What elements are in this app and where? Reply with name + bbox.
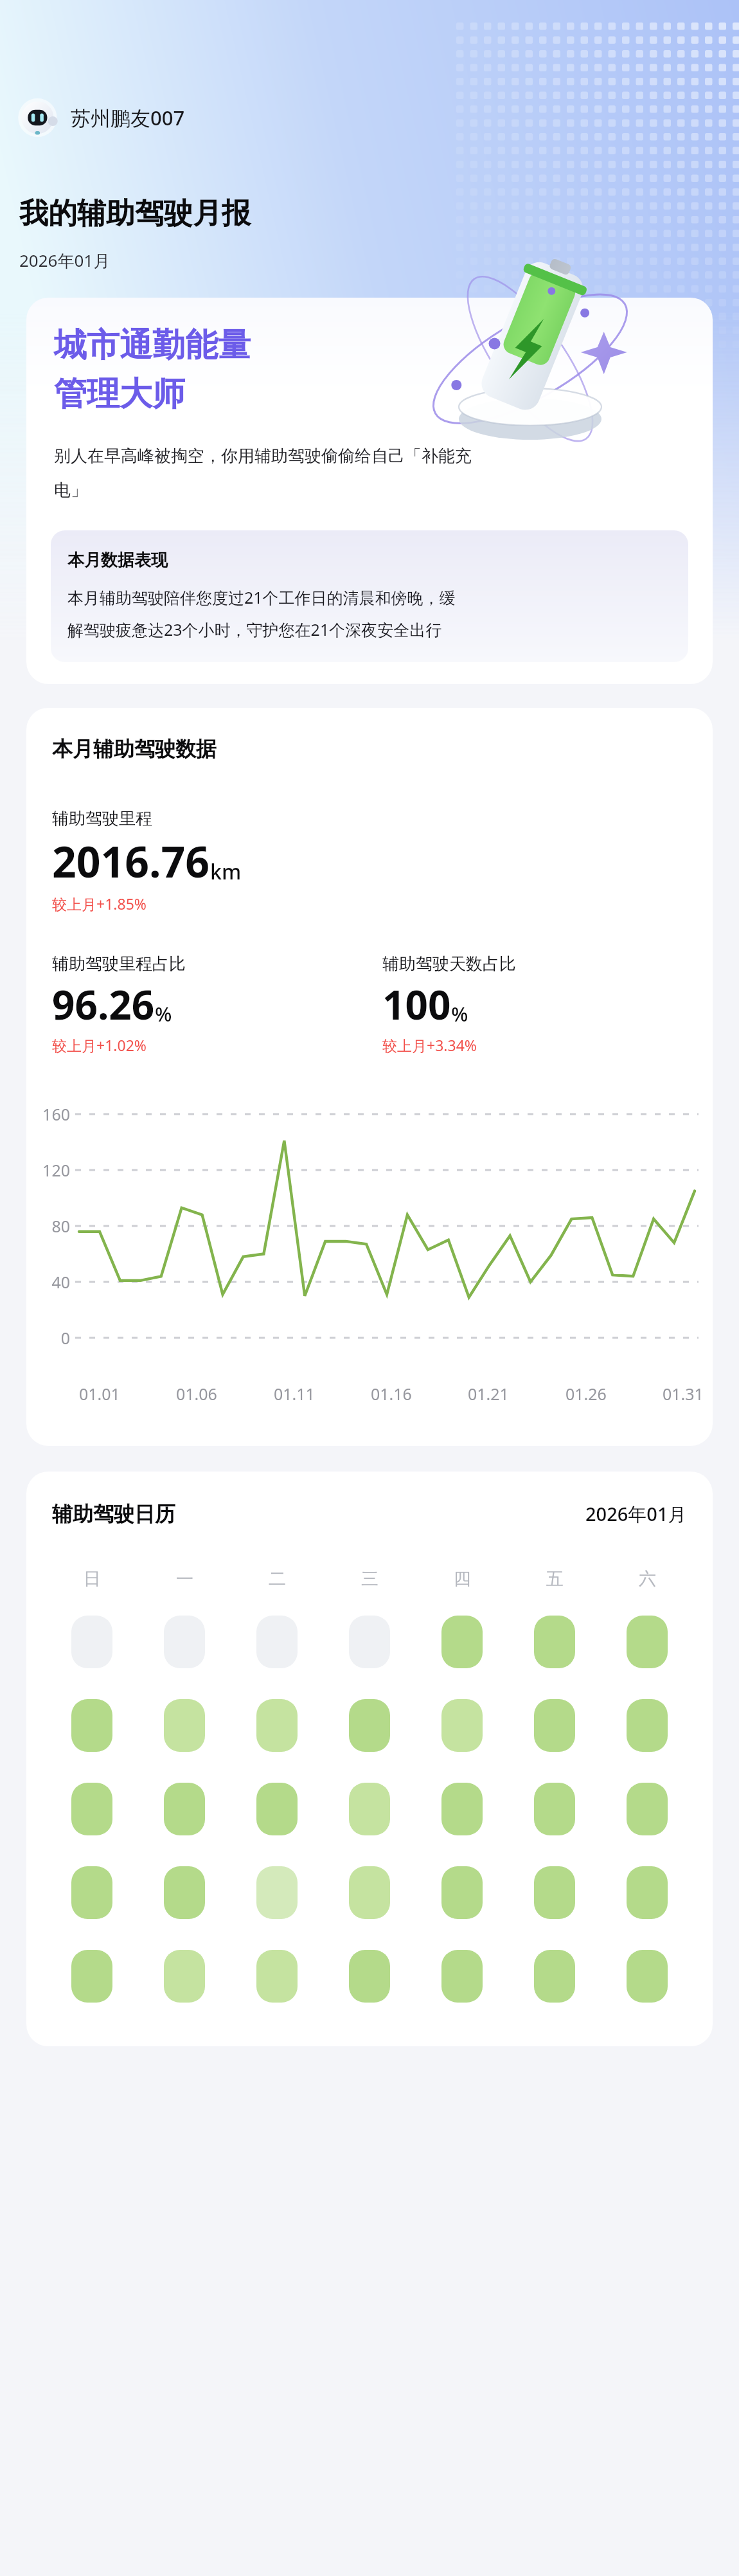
button[interactable] — [71, 1866, 112, 1919]
button[interactable] — [627, 1783, 668, 1835]
staticText: 电」 — [54, 480, 87, 501]
staticText: 01.01 — [79, 1383, 120, 1405]
button[interactable] — [349, 1616, 390, 1668]
staticText: 较上月+3.34% — [382, 1035, 477, 1055]
button[interactable]: 本月辅助驾驶数据 — [26, 708, 713, 1446]
staticText: 较上月+1.02% — [52, 1035, 147, 1055]
staticText: 辅助驾驶天数占比 — [382, 953, 516, 975]
staticText: 一 — [176, 1568, 193, 1590]
staticText: 160 — [31, 1103, 70, 1125]
staticText: 苏州鹏友007 — [71, 104, 185, 131]
button[interactable] — [349, 1699, 390, 1752]
button[interactable] — [441, 1783, 483, 1835]
button[interactable] — [441, 1616, 483, 1668]
button[interactable] — [256, 1616, 298, 1668]
button[interactable] — [534, 1783, 575, 1835]
button[interactable]: 辅助驾驶里程占比 — [52, 953, 382, 1055]
staticText: 01.26 — [565, 1383, 607, 1405]
button[interactable]: 辅助驾驶天数占比 — [382, 953, 713, 1055]
staticText: 01.06 — [176, 1383, 217, 1405]
staticText: 40 — [31, 1271, 70, 1293]
staticText: 管理大师 — [54, 374, 185, 415]
staticText: 2026年01月 — [19, 249, 111, 272]
button[interactable] — [164, 1783, 205, 1835]
staticText: 01.31 — [663, 1383, 704, 1405]
staticText: 100 — [382, 977, 451, 1031]
button[interactable] — [627, 1699, 668, 1752]
button[interactable] — [256, 1783, 298, 1835]
button[interactable]: 辅助驾驶日历 — [26, 1472, 713, 2046]
staticText: km — [210, 858, 242, 886]
button[interactable] — [256, 1699, 298, 1752]
button[interactable] — [441, 1950, 483, 2003]
staticText: 2026年01月 — [585, 1501, 687, 1527]
button[interactable] — [627, 1616, 668, 1668]
staticText: 辅助驾驶日历 — [52, 1501, 175, 1527]
button[interactable] — [627, 1866, 668, 1919]
button[interactable] — [349, 1866, 390, 1919]
button[interactable] — [534, 1699, 575, 1752]
button[interactable] — [441, 1699, 483, 1752]
staticText: 三 — [361, 1568, 378, 1590]
staticText: 120 — [31, 1159, 70, 1181]
button[interactable] — [534, 1866, 575, 1919]
button[interactable] — [534, 1950, 575, 2003]
staticText: 辅助驾驶里程占比 — [52, 953, 186, 975]
button[interactable] — [164, 1616, 205, 1668]
staticText: 四 — [454, 1568, 471, 1590]
staticText: 五 — [546, 1568, 564, 1590]
button[interactable] — [71, 1699, 112, 1752]
button[interactable] — [441, 1866, 483, 1919]
button[interactable] — [256, 1866, 298, 1919]
staticText: 01.11 — [274, 1383, 315, 1405]
button[interactable] — [164, 1950, 205, 2003]
staticText: 六 — [639, 1568, 656, 1590]
staticText: 别人在早高峰被掏空，你用辅助驾驶偷偷给自己「补能充 — [54, 446, 472, 467]
button[interactable] — [534, 1616, 575, 1668]
button[interactable] — [71, 1950, 112, 2003]
staticText: % — [451, 1000, 468, 1027]
button[interactable] — [164, 1866, 205, 1919]
button[interactable] — [349, 1783, 390, 1835]
staticText: 01.21 — [468, 1383, 509, 1405]
staticText: 01.16 — [371, 1383, 412, 1405]
staticText: 辅助驾驶里程 — [52, 808, 152, 829]
staticText: 2016.76 — [52, 832, 210, 890]
staticText: 80 — [31, 1215, 70, 1237]
button[interactable]: User avatar — [18, 96, 185, 139]
staticText: 本月数据表现 — [67, 550, 168, 571]
staticText: 较上月+1.85% — [52, 894, 147, 914]
staticText: 0 — [31, 1327, 70, 1349]
button[interactable] — [71, 1616, 112, 1668]
staticText: 城市通勤能量 — [54, 325, 251, 366]
button[interactable] — [164, 1699, 205, 1752]
staticText: 我的辅助驾驶月报 — [19, 195, 251, 232]
button[interactable]: 城市通勤能量 — [26, 298, 713, 684]
staticText: 本月辅助驾驶数据 — [52, 736, 217, 762]
staticText: % — [155, 1000, 172, 1027]
button[interactable] — [349, 1950, 390, 2003]
staticText: 解驾驶疲惫达23个小时，守护您在21个深夜安全出行 — [67, 618, 442, 640]
button[interactable] — [71, 1783, 112, 1835]
button[interactable] — [627, 1950, 668, 2003]
button[interactable] — [256, 1950, 298, 2003]
staticText: 96.26 — [52, 977, 155, 1031]
staticText: 本月辅助驾驶陪伴您度过21个工作日的清晨和傍晚，缓 — [67, 586, 456, 608]
staticText: 日 — [84, 1568, 101, 1590]
staticText: 二 — [269, 1568, 286, 1590]
other: User avatar — [18, 96, 60, 139]
